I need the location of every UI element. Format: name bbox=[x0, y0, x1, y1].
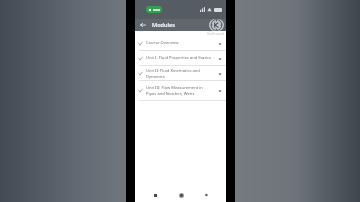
staticText: Unit I: Fluid Properties and Statics bbox=[146, 55, 214, 61]
button[interactable]: Expand bbox=[216, 40, 223, 47]
button[interactable]: Home bbox=[176, 190, 186, 200]
button[interactable]: Back bbox=[201, 190, 211, 200]
button[interactable]: Recent apps bbox=[150, 190, 160, 200]
button[interactable]: Expand bbox=[216, 55, 223, 62]
button[interactable]: Unit II: Fluid Kinematics and Dynamics bbox=[135, 66, 226, 80]
button[interactable]: Unit I: Fluid Properties and Statics bbox=[135, 51, 226, 65]
staticText: Draft saved bbox=[207, 32, 225, 36]
button[interactable]: Expand bbox=[216, 70, 223, 77]
staticText: Unit II: Fluid Kinematics and Dynamics bbox=[146, 68, 214, 79]
button[interactable]: Profile bbox=[209, 19, 224, 31]
button[interactable]: Back bbox=[138, 20, 148, 30]
button[interactable]: Course Overview bbox=[135, 36, 226, 50]
button[interactable]: Expand bbox=[216, 87, 223, 94]
staticText: Modules bbox=[152, 21, 175, 29]
button[interactable]: Unit III: Flow Measurement in Pipes and … bbox=[135, 81, 226, 100]
staticText: Course Overview bbox=[146, 40, 214, 46]
staticText: Unit III: Flow Measurement in Pipes and … bbox=[146, 85, 214, 96]
